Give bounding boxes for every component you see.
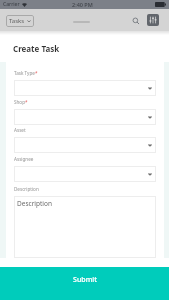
- button[interactable]: [14, 137, 156, 153]
- staticText: *: [35, 70, 38, 76]
- staticText: Shop: [14, 99, 25, 105]
- staticText: Assignee: [14, 156, 34, 162]
- staticText: Tasks: [9, 17, 25, 25]
- button[interactable]: Description: [14, 196, 156, 258]
- button[interactable]: Tasks: [6, 15, 34, 27]
- staticText: Submit: [73, 275, 97, 285]
- staticText: Carrier: [3, 1, 20, 8]
- staticText: *: [25, 99, 28, 105]
- staticText: Asset: [14, 127, 26, 133]
- staticText: Create Task: [13, 43, 60, 54]
- staticText: Description: [17, 199, 52, 208]
- button[interactable]: Search: [129, 14, 142, 27]
- button[interactable]: [14, 109, 156, 125]
- button[interactable]: Submit: [0, 267, 169, 300]
- staticText: 2:40 PM: [72, 1, 93, 8]
- staticText: Task Type: [14, 70, 35, 76]
- staticText: Description: [14, 186, 39, 192]
- button[interactable]: [14, 166, 156, 182]
- button[interactable]: [14, 80, 156, 96]
- button[interactable]: Filter: [147, 14, 159, 26]
